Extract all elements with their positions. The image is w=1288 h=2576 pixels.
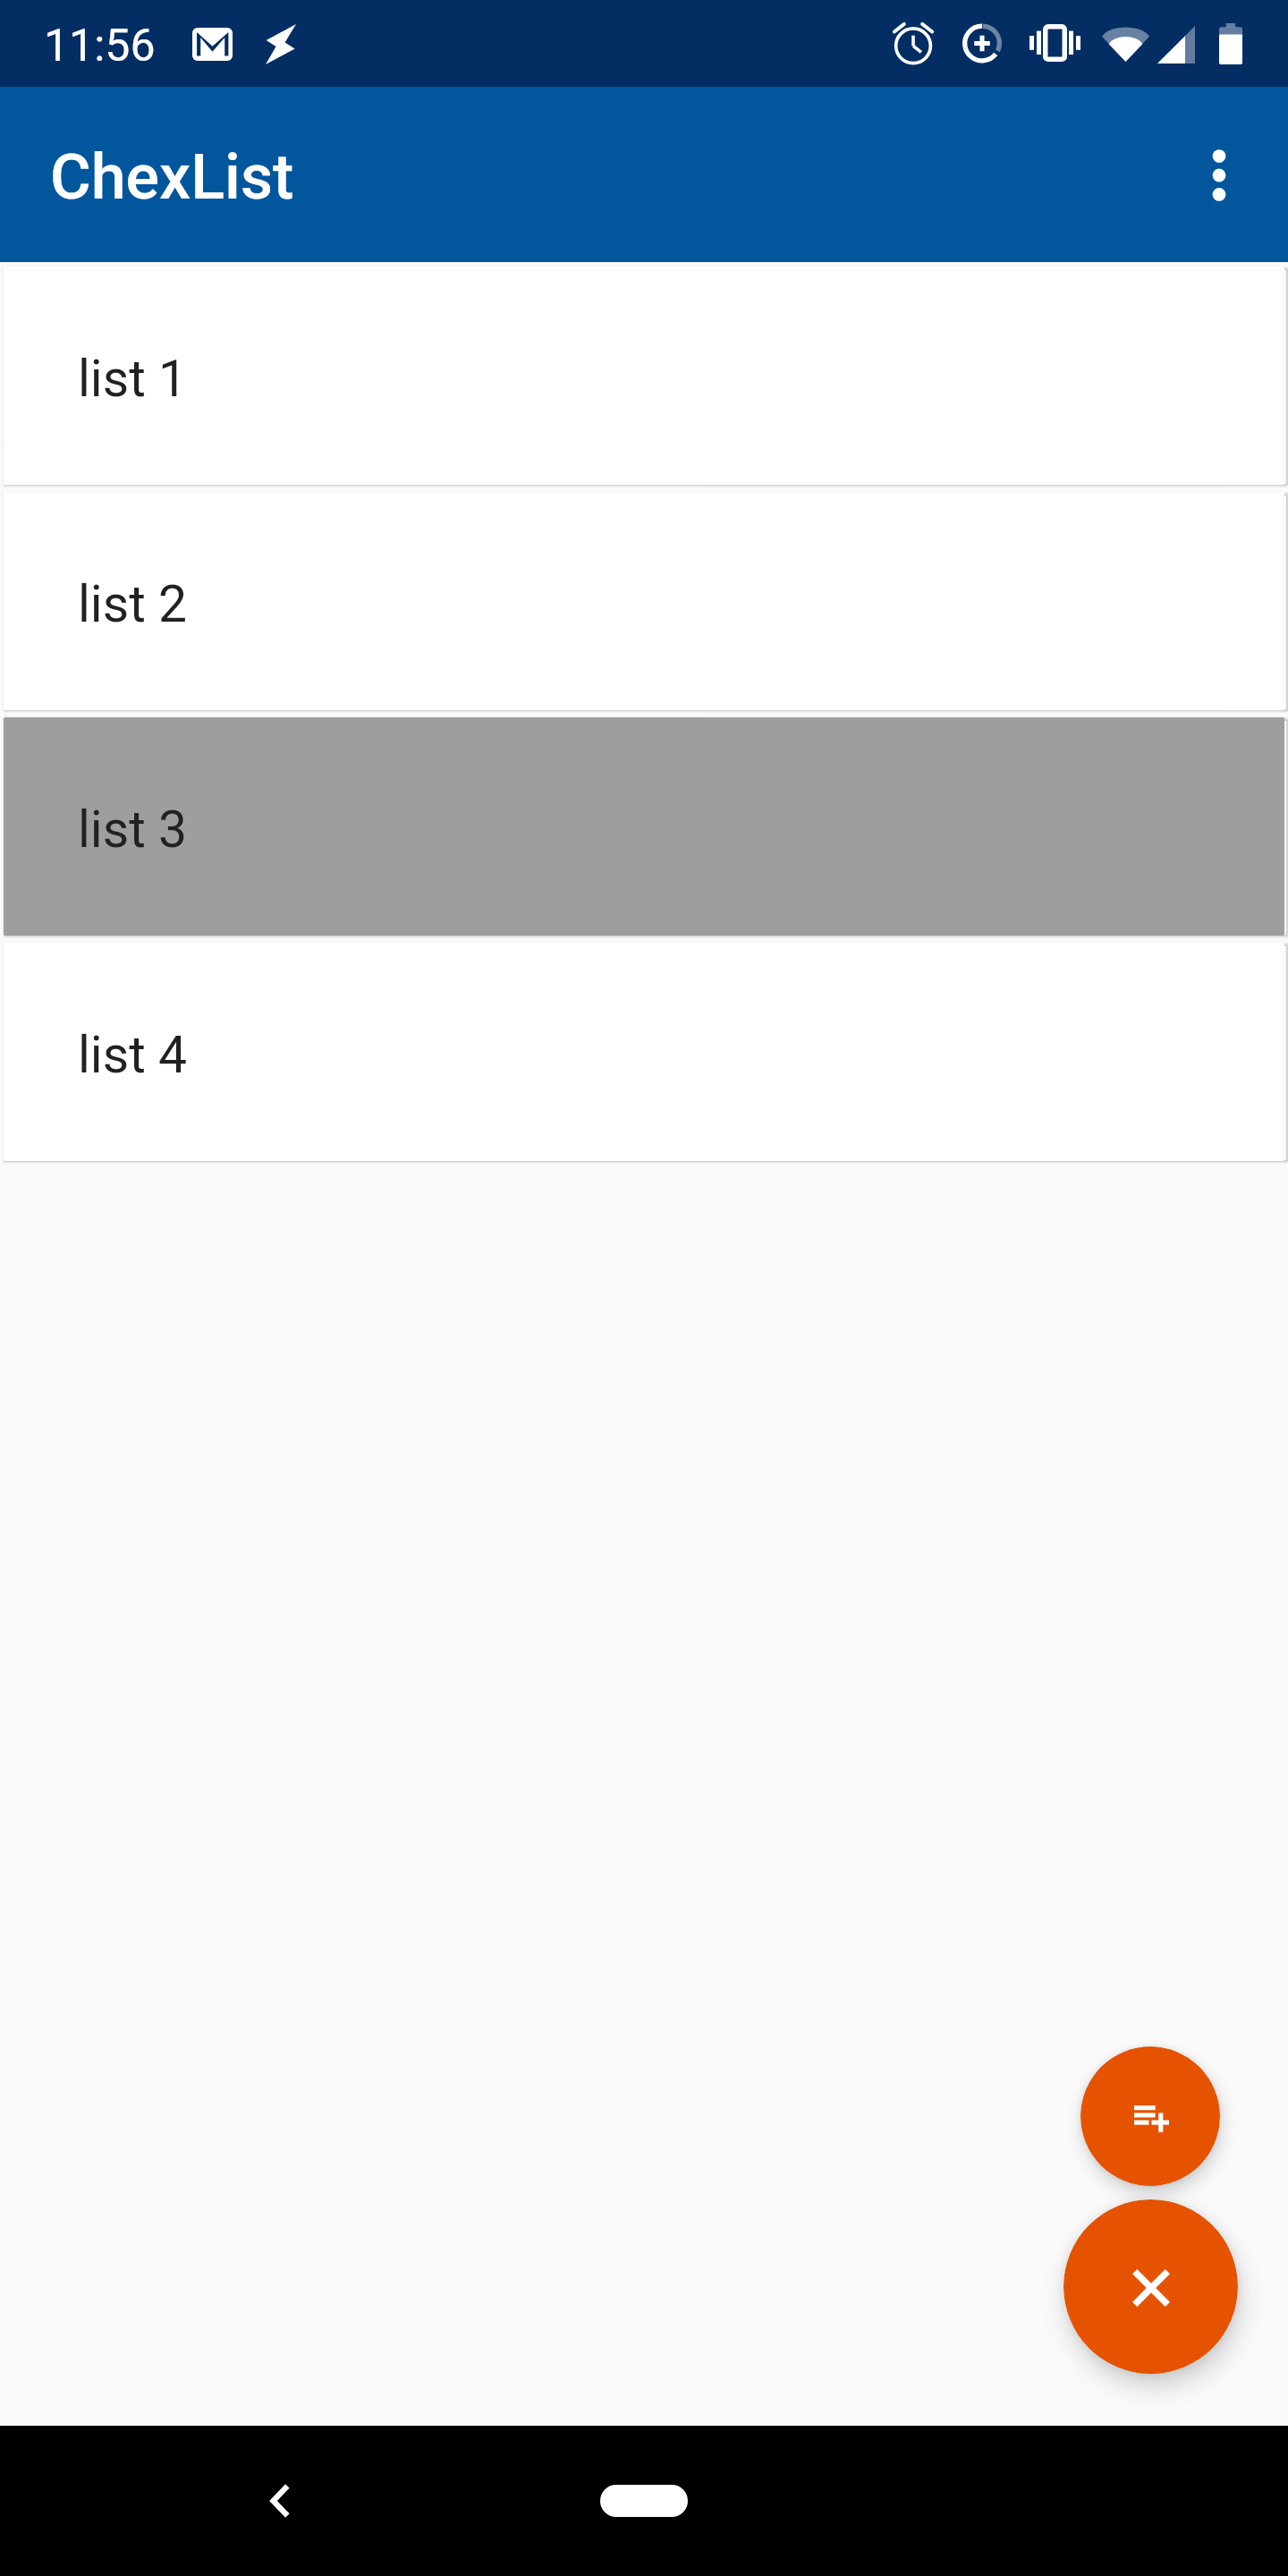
button[interactable]: list 1	[4, 267, 1284, 485]
button[interactable]: More options	[1155, 111, 1284, 240]
button[interactable]: list 4	[4, 943, 1284, 1161]
button[interactable]: Home	[600, 2485, 688, 2517]
button[interactable]: list 2	[4, 492, 1284, 710]
button[interactable]: Add list	[1080, 2046, 1220, 2186]
staticText: 11:56	[44, 20, 156, 72]
staticText: list 3	[78, 800, 187, 860]
button[interactable]: Back	[225, 2447, 332, 2555]
staticText: list 4	[78, 1025, 187, 1085]
button[interactable]: Close	[1063, 2199, 1238, 2374]
button[interactable]: list 3	[4, 717, 1284, 936]
staticText: list 1	[78, 349, 187, 409]
staticText: list 2	[78, 574, 187, 634]
staticText: ChexList	[50, 140, 294, 214]
